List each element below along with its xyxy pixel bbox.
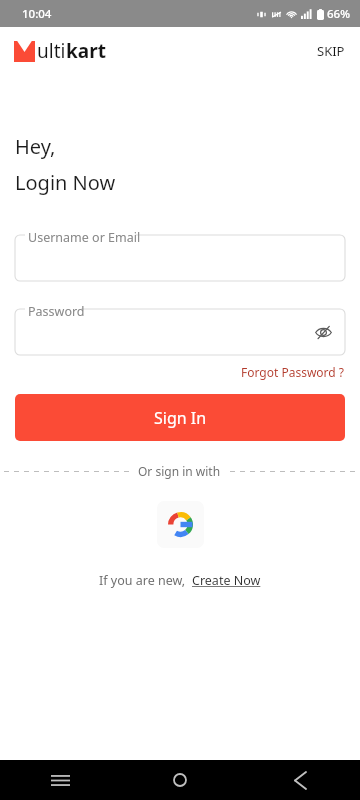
button[interactable]: Forgot Password ? — [241, 364, 345, 380]
button[interactable]: Back — [240, 760, 360, 800]
button[interactable]: Username or Email — [15, 229, 345, 281]
staticText: Username or Email — [28, 229, 141, 246]
staticText: Forgot Password ? — [241, 364, 345, 380]
staticText: If you are new, — [99, 572, 192, 589]
staticText: Hey, — [15, 133, 56, 160]
button[interactable]: Sign in with Google — [157, 501, 204, 548]
button[interactable]: Recents — [0, 760, 120, 800]
button[interactable]: Sign In — [15, 394, 345, 441]
button[interactable]: SKIP — [317, 42, 345, 60]
staticText: Sign In — [154, 407, 207, 429]
button[interactable]: If you are new, — [0, 572, 360, 589]
button[interactable]: ulti — [14, 38, 106, 64]
staticText: 66% — [327, 6, 350, 22]
staticText: SKIP — [317, 42, 345, 60]
button[interactable]: Show password — [311, 320, 335, 344]
staticText: ulti — [37, 38, 66, 64]
staticText: 10:04 — [22, 6, 52, 22]
staticText: Create Now — [192, 572, 261, 589]
staticText: Password — [28, 303, 85, 320]
staticText: Login Now — [15, 169, 116, 196]
button[interactable]: Password — [15, 303, 345, 355]
staticText: Or sign in with — [138, 463, 221, 479]
button[interactable]: Home — [120, 760, 240, 800]
staticText: kart — [66, 38, 106, 64]
